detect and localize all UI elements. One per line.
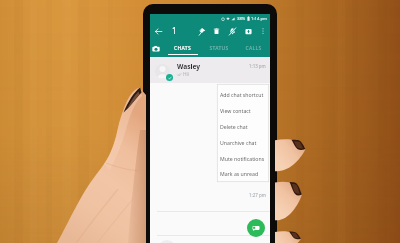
staticText: 38% [237, 16, 246, 22]
staticText: CALLS [245, 45, 262, 52]
staticText: Delete chat [220, 123, 248, 130]
button[interactable]: STATUS [201, 42, 236, 57]
button[interactable]: CHATS [165, 42, 200, 57]
staticText: View contact [220, 107, 251, 114]
staticText: 1:14 pm [251, 16, 267, 22]
staticText: Mute notifications [220, 155, 265, 162]
button[interactable]: Unarchive chat [217, 134, 269, 150]
staticText: CHATS [174, 45, 191, 52]
button[interactable]: CALLS [236, 42, 271, 57]
button[interactable]: Wasley [150, 57, 270, 83]
button[interactable]: New chat [247, 219, 265, 237]
staticText: Wasley [177, 62, 201, 71]
button[interactable]: Mute notifications [228, 27, 237, 36]
button[interactable]: Delete chat [217, 118, 269, 134]
staticText: Unarchive chat [220, 139, 257, 146]
button[interactable]: Pin chat [197, 27, 206, 36]
button[interactable]: Back [154, 27, 163, 36]
button[interactable]: Camera [152, 45, 160, 53]
button[interactable]: More options [259, 27, 267, 35]
staticText: 1 [172, 25, 177, 36]
staticText: STATUS [209, 45, 229, 52]
staticText: Hii [183, 71, 190, 78]
button[interactable]: Delete chat [212, 27, 221, 36]
button[interactable]: View contact [217, 102, 269, 118]
staticText: Mark as unread [220, 170, 259, 177]
staticText: 1:27 pm [249, 192, 267, 198]
staticText: 1:13 pm [249, 63, 266, 69]
button[interactable]: Mute notifications [217, 150, 269, 166]
button[interactable]: Add chat shortcut [217, 86, 269, 102]
staticText: Add chat shortcut [220, 91, 264, 98]
button[interactable]: Archive chat [244, 27, 253, 36]
button[interactable]: Mark as unread [217, 166, 269, 180]
